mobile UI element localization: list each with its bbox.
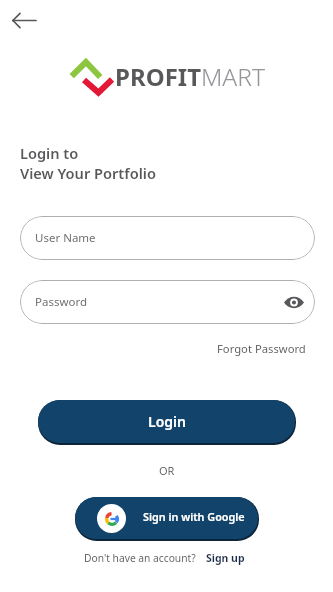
- staticText: User Name: [35, 230, 96, 246]
- button[interactable]: Sign up: [206, 551, 245, 565]
- staticText: Login to: [20, 143, 79, 163]
- staticText: MART: [201, 60, 265, 93]
- staticText: Don't have an account?: [84, 551, 196, 565]
- button[interactable]: User Name: [20, 216, 315, 260]
- button[interactable]: Back: [2, 0, 46, 42]
- button[interactable]: Sign in with Google: [75, 497, 258, 539]
- button[interactable]: Login: [38, 400, 295, 443]
- staticText: Sign in with Google: [143, 509, 245, 524]
- staticText: Login: [148, 412, 186, 431]
- staticText: PROFIT: [115, 60, 201, 93]
- staticText: Password: [35, 294, 88, 310]
- staticText: View Your Portfolio: [20, 163, 156, 183]
- button[interactable]: Forgot Password: [217, 341, 306, 356]
- button[interactable]: Password: [20, 280, 315, 324]
- button[interactable]: Show password: [278, 286, 310, 318]
- staticText: OR: [159, 463, 175, 478]
